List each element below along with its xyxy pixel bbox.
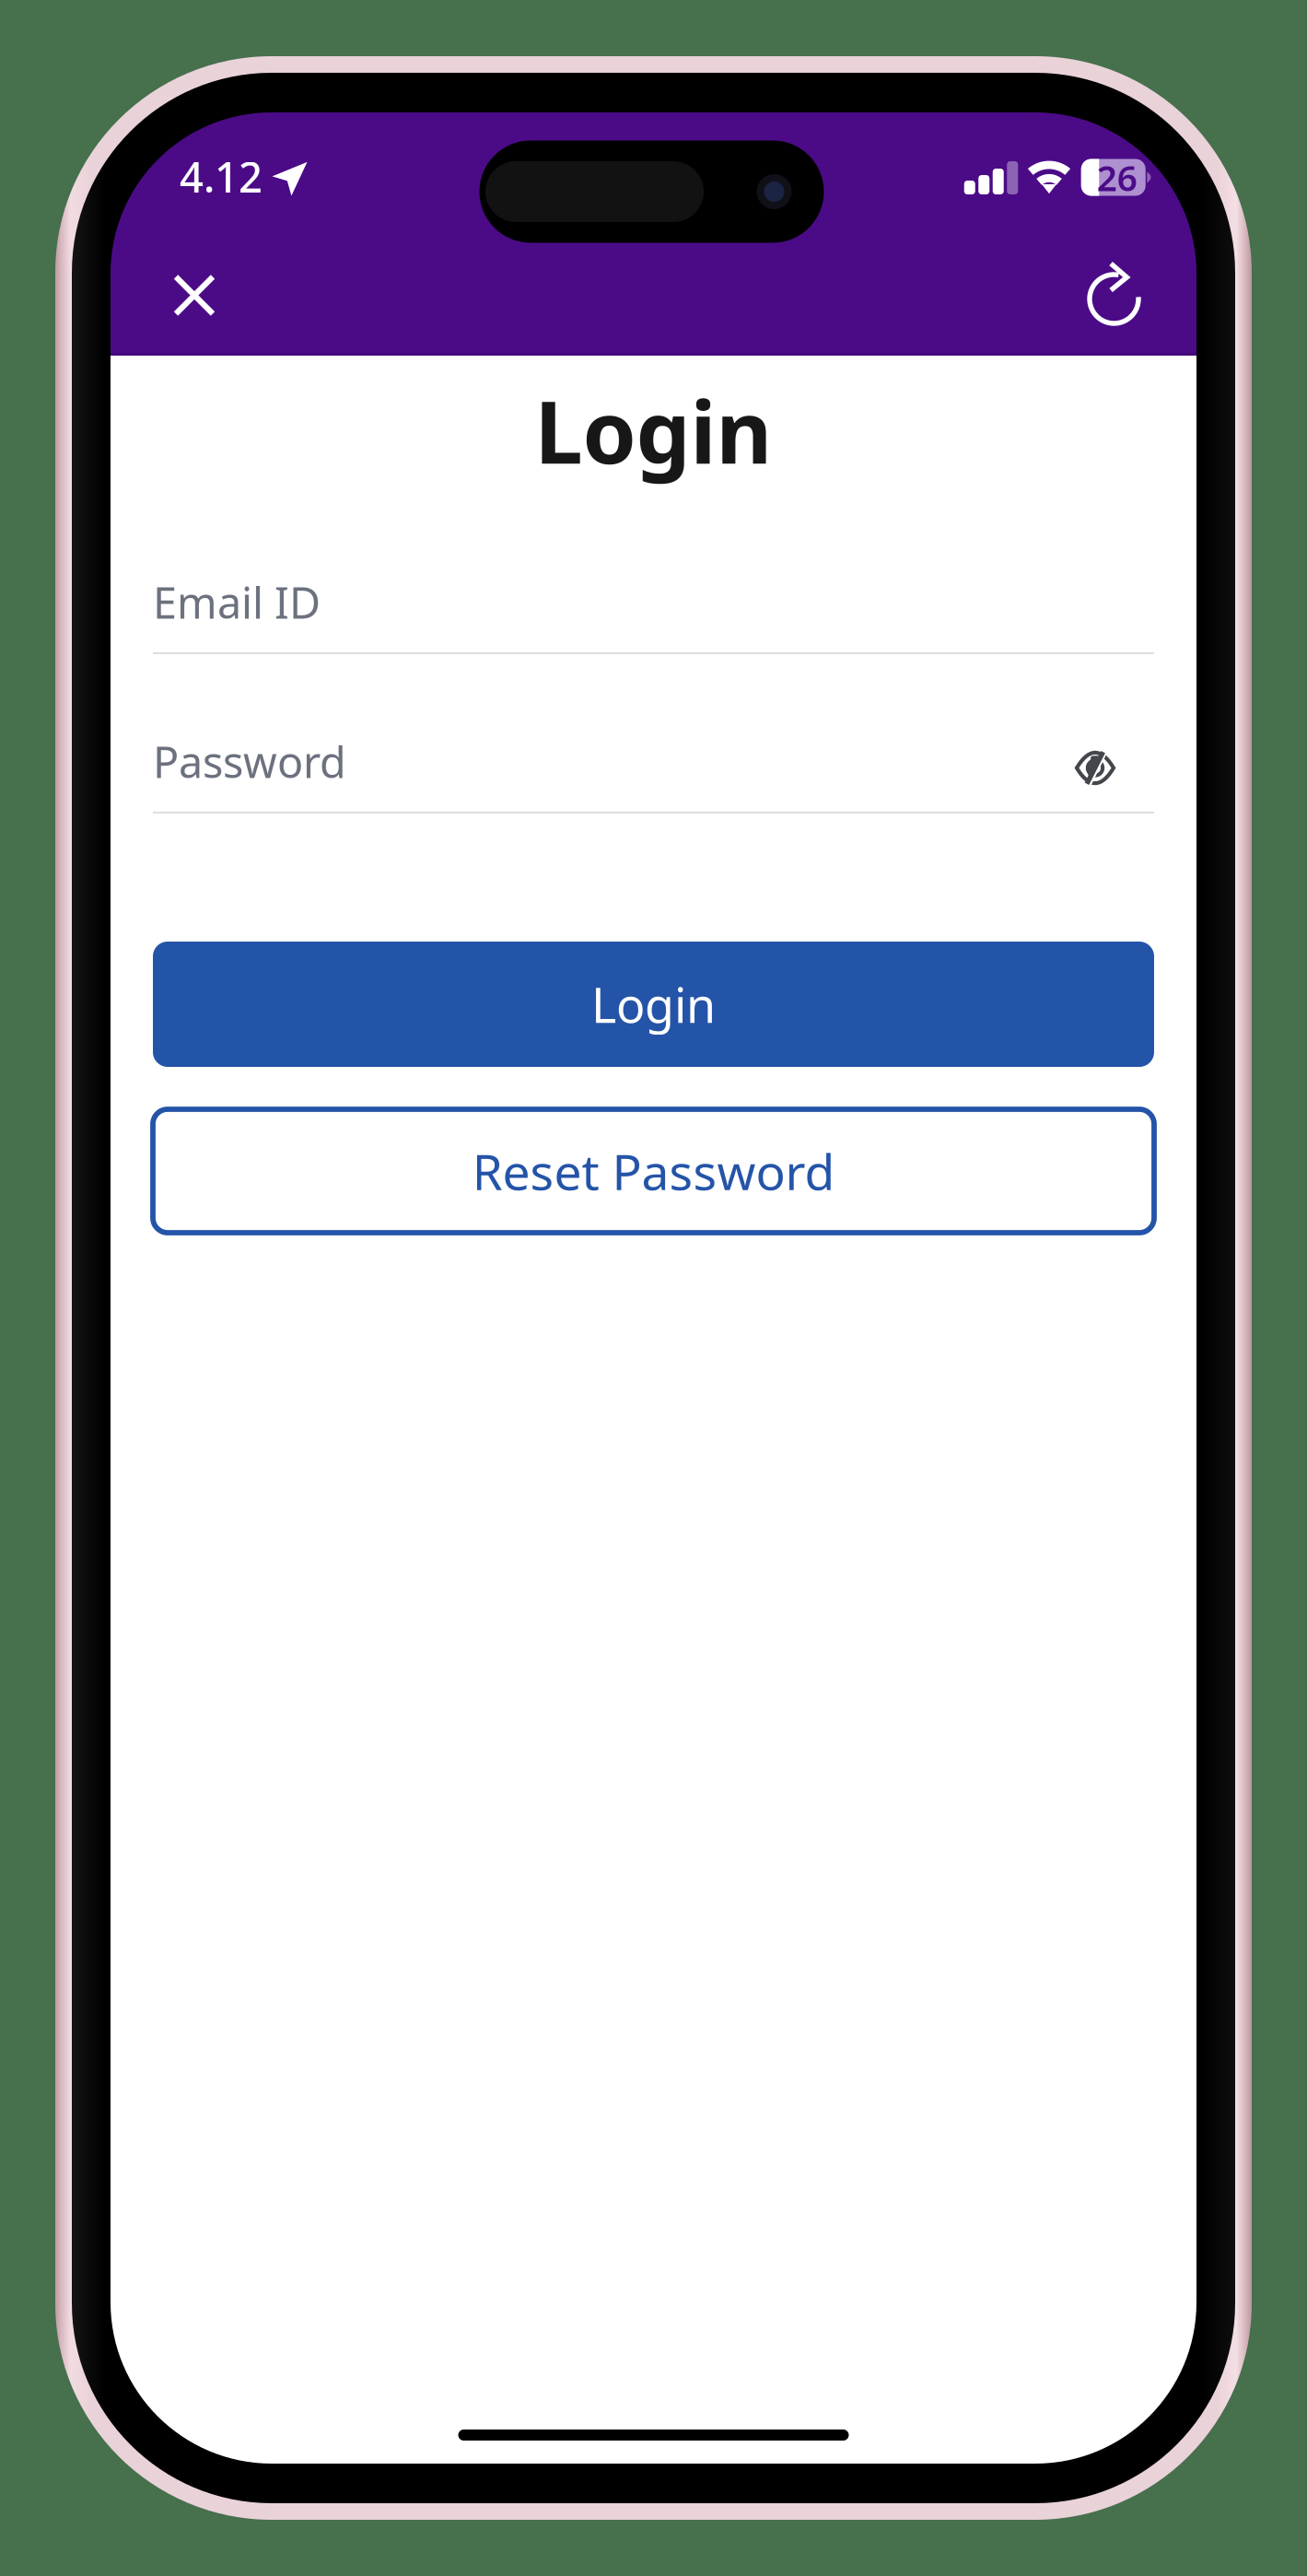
staticText: Login xyxy=(535,373,772,487)
button[interactable]: Reset Password xyxy=(153,1109,1154,1233)
staticText: 4.12 xyxy=(180,149,263,204)
button[interactable]: Reload xyxy=(1063,243,1165,344)
staticText: Login xyxy=(591,972,716,1036)
button[interactable]: Close xyxy=(144,245,245,346)
staticText: 26 xyxy=(1097,154,1137,201)
staticText: Email ID xyxy=(153,574,321,631)
button[interactable]: Show password xyxy=(1036,732,1154,798)
button[interactable]: Login xyxy=(153,942,1154,1067)
staticText: Password xyxy=(153,733,346,790)
staticText: Reset Password xyxy=(472,1138,835,1204)
